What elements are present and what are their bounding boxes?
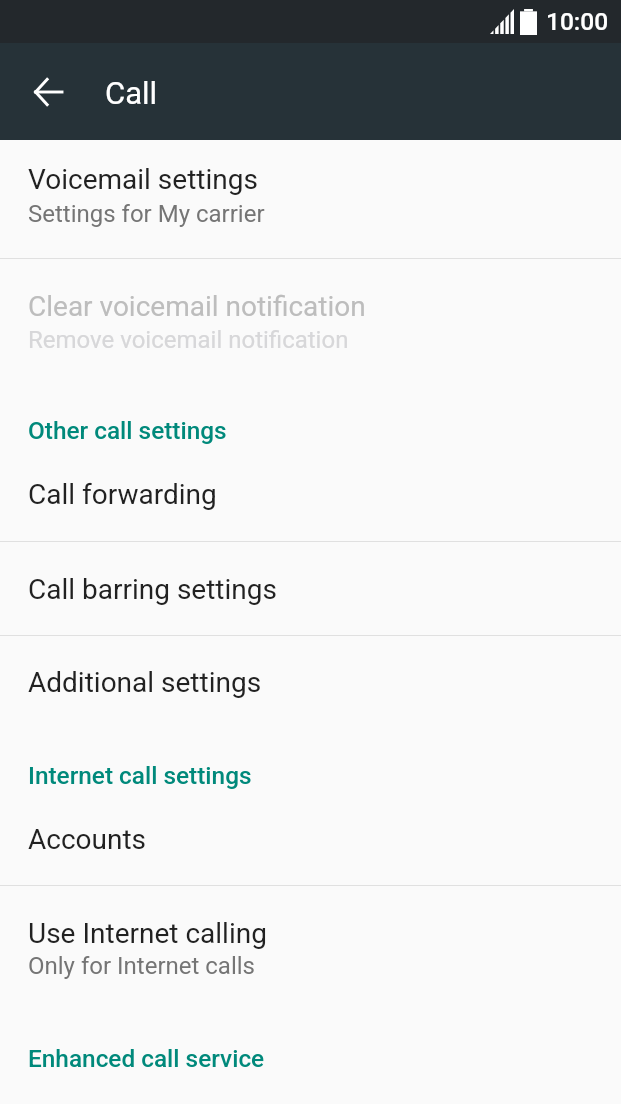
button[interactable]: Call forwarding xyxy=(0,455,621,542)
button[interactable]: Call barring settings xyxy=(0,542,621,636)
staticText: Call xyxy=(105,75,158,111)
staticText: Voicemail settings xyxy=(28,163,258,196)
staticText: Internet call settings xyxy=(28,761,252,790)
button[interactable]: Use Internet calling xyxy=(0,886,621,1010)
button[interactable]: Voicemail settings xyxy=(0,140,621,259)
staticText: Other call settings xyxy=(28,416,227,445)
other: Battery full xyxy=(520,9,537,35)
staticText: Accounts xyxy=(28,823,147,856)
button[interactable]: Additional settings xyxy=(0,636,621,725)
other: Signal strength xyxy=(490,9,514,34)
staticText: Use Internet calling xyxy=(28,917,267,950)
button[interactable]: Navigate up xyxy=(0,43,96,140)
staticText: Call barring settings xyxy=(28,573,277,606)
staticText: Additional settings xyxy=(28,666,262,699)
staticText: Enhanced call service xyxy=(28,1044,265,1073)
staticText: Remove voicemail notification xyxy=(28,326,349,354)
staticText: Settings for My carrier xyxy=(28,200,265,228)
staticText: Call forwarding xyxy=(28,478,217,511)
staticText: Only for Internet calls xyxy=(28,952,255,980)
staticText: 10:00 xyxy=(546,7,609,36)
button[interactable]: Accounts xyxy=(0,800,621,886)
button: Clear voicemail notification xyxy=(0,259,621,400)
staticText: Clear voicemail notification xyxy=(28,290,366,323)
